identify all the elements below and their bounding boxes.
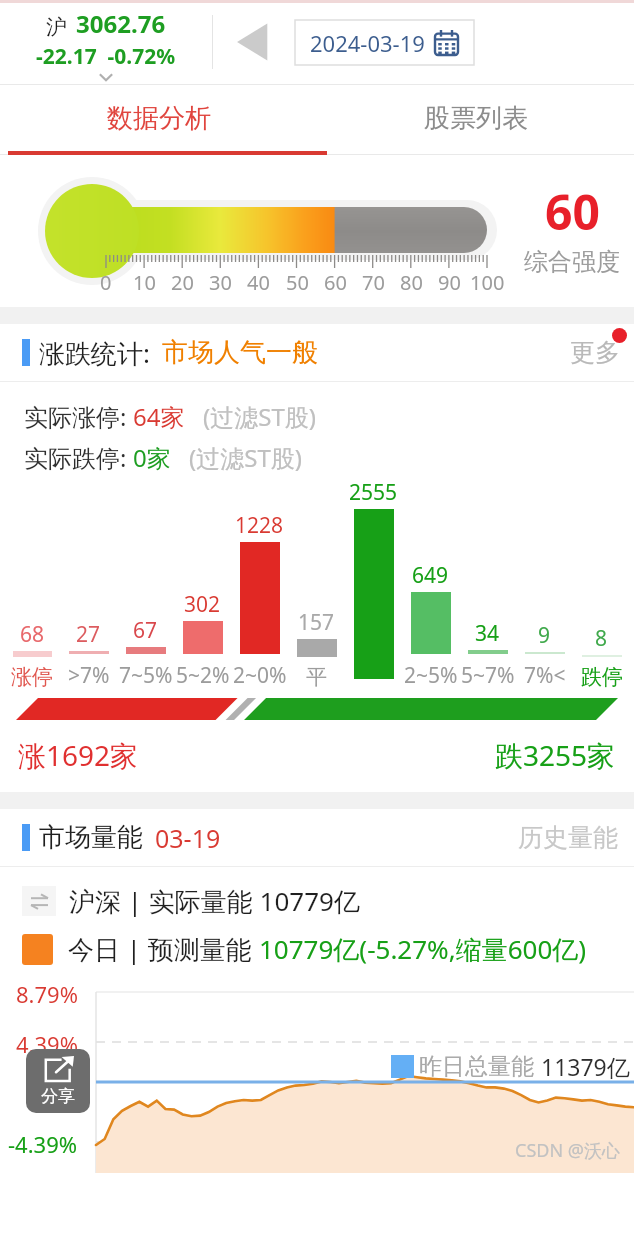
staticText: 68 [20,620,45,649]
staticText: 涨跌统计: [39,335,150,371]
staticText: 8.79% [16,979,78,1009]
staticText: 历史量能 [518,822,618,853]
staticText: 34 [475,619,500,648]
staticText: 2~0% [233,661,287,690]
staticText: 实际涨停: [24,400,133,433]
staticText: 8 [595,624,608,653]
staticText: 649 [412,561,449,590]
staticText: 40 [247,269,270,296]
button[interactable]: 沪 [0,0,212,84]
staticText: 60 [545,179,600,244]
staticText: (过滤ST股) [189,441,302,474]
staticText: 综合强度 [524,247,620,277]
staticText: 数据分析 [107,102,211,135]
staticText: >7% [68,661,110,690]
staticText: 100 [470,269,505,296]
staticText: -4.39% [8,1129,78,1159]
staticText: 90 [438,269,461,296]
staticText: 跌停 [581,664,623,690]
staticText: 2555 [349,478,398,507]
staticText: 昨日总量能 [419,1052,534,1081]
staticText: (过滤ST股) [203,400,316,433]
staticText: 302 [184,590,221,619]
staticText: 5~2% [176,661,230,690]
staticText: 11379亿 [541,1051,630,1082]
staticText: 27 [76,620,101,649]
staticText: 市场量能 [39,821,143,854]
staticText: 67 [133,616,158,645]
button[interactable]: 股票列表 [317,85,634,151]
staticText: 70 [362,269,385,296]
staticText: 80 [400,269,423,296]
staticText: 50 [286,269,309,296]
staticText: 64家 [133,400,185,433]
button[interactable]: 分享 [26,1049,90,1113]
staticText: CSDN @沃心 [515,1138,620,1163]
staticText: -22.17 -0.72% [36,42,176,71]
staticText: 涨停 [11,664,53,690]
staticText: 4.39% [16,1029,78,1059]
staticText: 今日 | 预测量能 [68,931,259,967]
staticText: 更多 [570,337,620,368]
staticText: 跌3255家 [495,736,616,774]
staticText: 1228 [235,511,284,540]
staticText: 10 [133,269,156,296]
button[interactable]: 涨跌统计: [0,324,634,381]
staticText: 实际跌停: [24,441,133,474]
staticText: 股票列表 [424,102,528,135]
staticText: 157 [298,608,335,637]
staticText: 10779亿(-5.27%,缩量600亿) [259,931,587,967]
button[interactable]: 2024-03-19 [295,20,474,65]
staticText: 03-19 [155,821,221,855]
staticText: 市场人气一般 [162,336,318,369]
staticText: 沪深 | 实际量能 10779亿 [69,883,360,919]
staticText: 7%< [524,661,566,690]
staticText: 涨1692家 [18,736,139,774]
staticText: 平 [306,664,327,690]
button[interactable]: Previous day [213,0,291,84]
staticText: 2~5% [404,661,458,690]
staticText: 7~5% [119,661,173,690]
staticText: 分享 [41,1086,75,1107]
staticText: 20 [171,269,194,296]
staticText: 9 [538,621,551,650]
staticText: 2024-03-19 [310,28,425,58]
staticText: 沪 [46,14,67,40]
button[interactable]: 市场量能 [0,809,634,866]
staticText: 0家 [133,441,171,474]
staticText: 30 [209,269,232,296]
button[interactable]: 数据分析 [0,85,317,151]
staticText: 5~7% [461,661,515,690]
staticText: 0 [100,269,112,296]
staticText: 60 [324,269,347,296]
staticText: 3062.76 [76,7,166,40]
